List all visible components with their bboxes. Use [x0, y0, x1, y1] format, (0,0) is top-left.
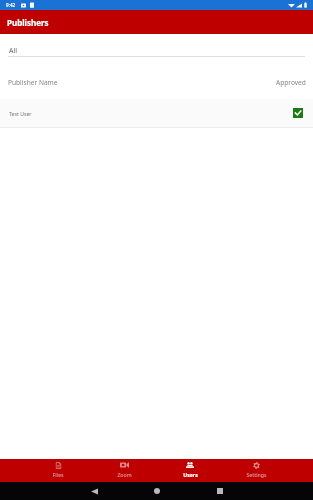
button[interactable]: Approved — [293, 108, 303, 118]
button[interactable]: Recents — [213, 484, 227, 498]
staticText: Publisher Name — [8, 78, 58, 87]
staticText: Settings — [246, 471, 267, 478]
button[interactable]: Home — [150, 484, 164, 498]
staticText: Approved — [276, 78, 306, 87]
button[interactable]: Settings — [223, 459, 289, 482]
button[interactable]: Test User — [0, 99, 313, 127]
staticText: Test User — [9, 110, 32, 117]
button[interactable]: Users — [157, 459, 223, 482]
staticText: 9:42 — [6, 2, 16, 8]
button[interactable]: Zoom — [91, 459, 157, 482]
button[interactable]: Files — [25, 459, 91, 482]
staticText: All — [9, 46, 18, 56]
button[interactable]: All — [0, 34, 313, 57]
staticText: Publishers — [7, 17, 49, 28]
staticText: Files — [52, 471, 64, 478]
staticText: Users — [183, 471, 198, 478]
staticText: Zoom — [117, 471, 132, 478]
button[interactable]: Back — [87, 484, 101, 498]
